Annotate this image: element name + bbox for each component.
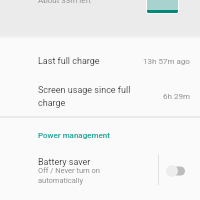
button[interactable]: Battery saver	[0, 157, 158, 187]
staticText: About 33m left	[38, 0, 91, 5]
staticText: Screen usage since full charge	[38, 85, 163, 108]
staticText: Last full charge	[38, 56, 143, 67]
staticText: Battery saver	[38, 157, 91, 168]
button[interactable]: Last full charge	[0, 51, 200, 71]
staticText: 13h 57m ago	[143, 57, 190, 66]
staticText: 6h 29m	[163, 92, 190, 101]
staticText: Power management	[38, 131, 110, 140]
staticText: Off / Never turn on automatically	[38, 166, 100, 185]
button[interactable]: Screen usage since full charge	[0, 80, 200, 112]
button[interactable]: Toggle battery saver	[159, 150, 200, 194]
